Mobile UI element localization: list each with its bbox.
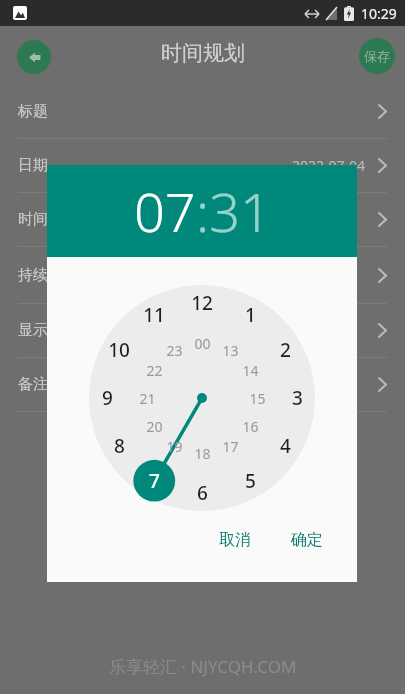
button[interactable]: 时间	[0, 193, 405, 246]
staticText: 持续	[18, 266, 48, 285]
staticText: 14	[242, 361, 259, 380]
staticText: 时间	[18, 210, 48, 229]
staticText: 11	[143, 302, 165, 328]
staticText: 5	[245, 468, 256, 494]
staticText: 13	[222, 341, 239, 360]
button[interactable]: 确定	[279, 524, 335, 556]
staticText: 备注	[18, 375, 48, 394]
staticText: 18	[194, 444, 211, 463]
button[interactable]: 日期	[0, 139, 405, 192]
button[interactable]: 保存	[359, 38, 395, 74]
staticText: 7	[149, 468, 160, 494]
staticText: 2022-07-04	[292, 156, 366, 175]
staticText: 保存	[364, 48, 390, 64]
button[interactable]: 取消	[207, 524, 263, 556]
staticText: 19	[166, 437, 183, 456]
staticText: 20	[146, 417, 163, 436]
staticText: 4	[280, 433, 291, 459]
staticText: 23	[166, 341, 183, 360]
staticText: 17	[222, 437, 239, 456]
button[interactable]: 07	[134, 174, 196, 248]
staticText: 确定	[291, 530, 323, 550]
staticText: 1	[245, 302, 256, 328]
button[interactable]: 备注	[0, 358, 405, 411]
staticText: 标题	[18, 102, 48, 121]
button[interactable]: Back	[17, 40, 51, 74]
staticText: 21	[139, 389, 156, 408]
button[interactable]: 持续	[0, 247, 405, 303]
staticText: 00	[194, 334, 211, 353]
staticText: 3	[292, 385, 303, 411]
staticText: 22	[146, 361, 163, 380]
staticText: 显示	[18, 321, 48, 340]
staticText: 日期	[18, 156, 48, 175]
staticText: 10:29	[361, 4, 397, 23]
staticText: 12	[191, 290, 213, 316]
staticText: 2	[280, 337, 291, 363]
staticText: 9	[102, 385, 113, 411]
button[interactable]: 显示	[0, 304, 405, 357]
staticText: 取消	[219, 530, 251, 550]
staticText: 乐享轻汇 · NJYCQH.COM	[109, 655, 297, 678]
button[interactable]: :31	[196, 174, 271, 248]
staticText: 8	[114, 433, 125, 459]
staticText: 6	[197, 480, 208, 506]
staticText: 16	[242, 417, 259, 436]
button[interactable]: Clock dial, 7 hours selected	[89, 285, 315, 511]
staticText: 15	[249, 389, 266, 408]
staticText: 10	[108, 337, 130, 363]
button[interactable]: 标题	[0, 85, 405, 138]
staticText: 时间规划	[161, 40, 245, 66]
